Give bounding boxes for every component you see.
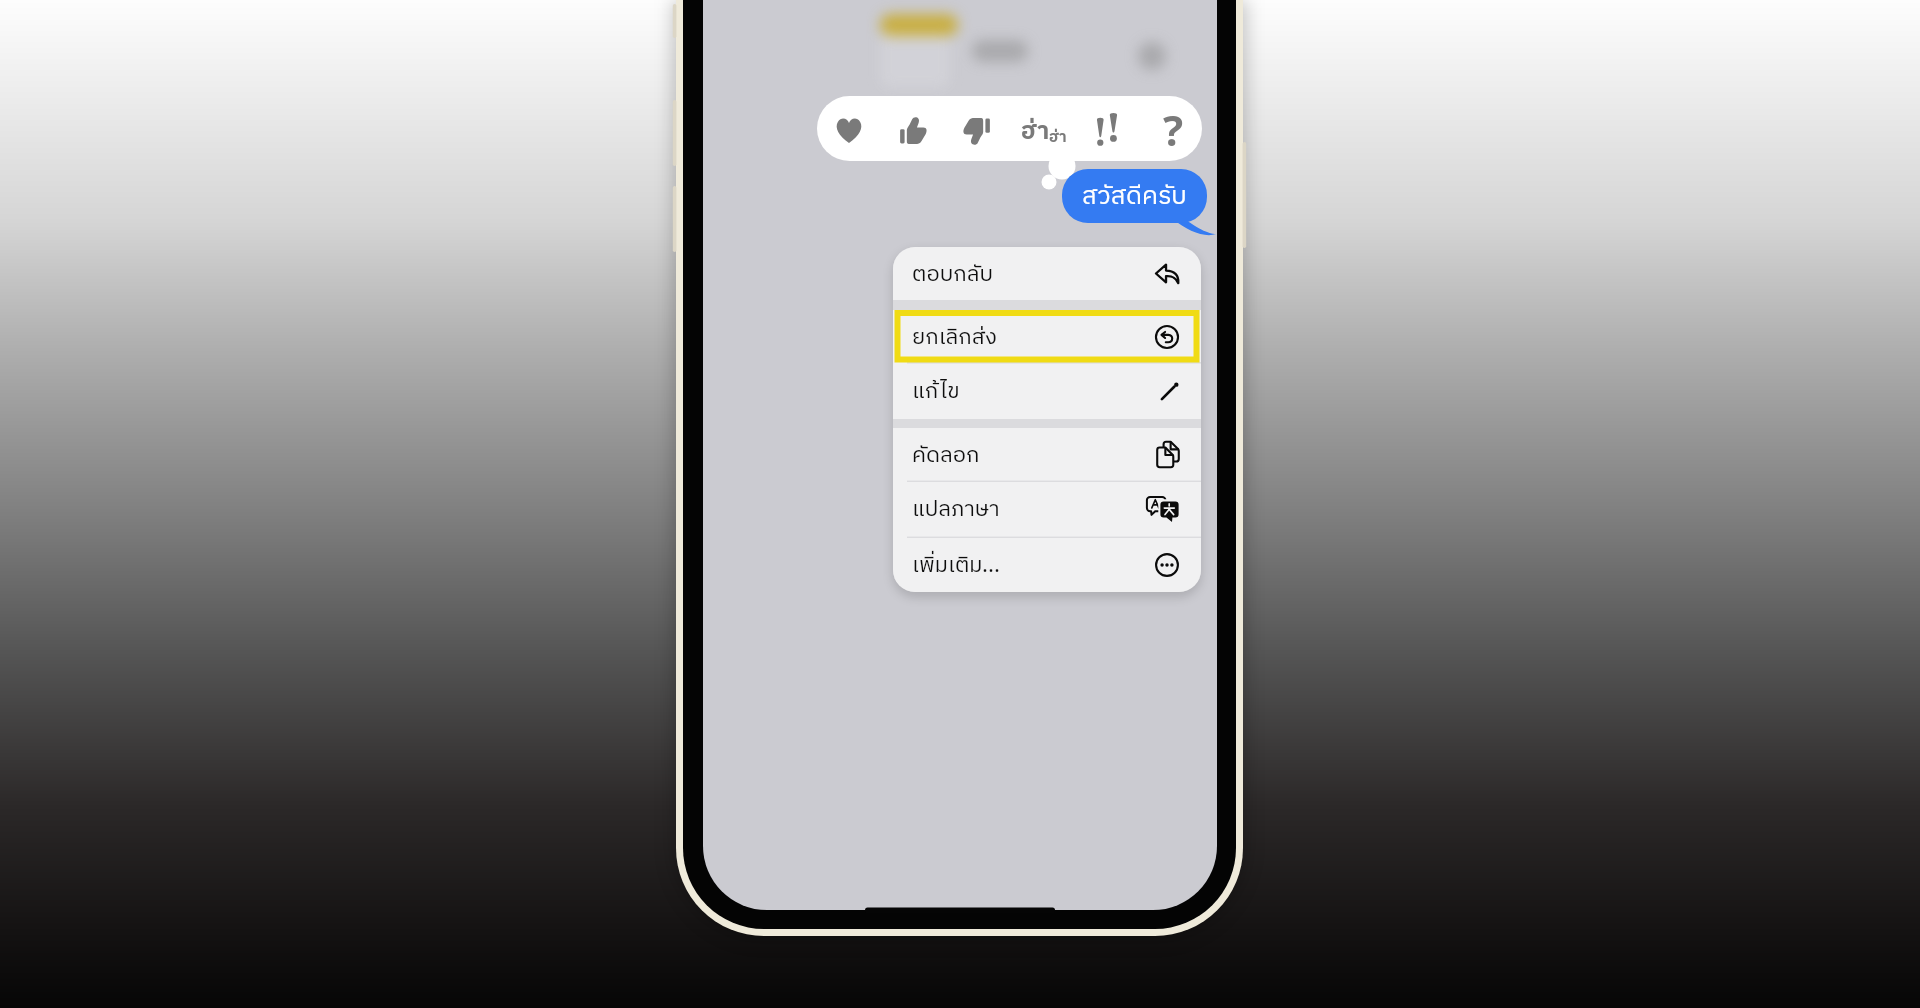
button[interactable]: ยกเลิกส่ง [893, 310, 1201, 363]
button[interactable]: Love [817, 96, 881, 161]
button[interactable]: Exclaim [1073, 96, 1137, 161]
button[interactable]: ตอบกลับ [893, 247, 1201, 300]
staticText: ? [1163, 101, 1184, 158]
staticText: แก้ไข [912, 373, 960, 409]
button[interactable]: เพิ่มเติม... [893, 537, 1201, 592]
button[interactable]: แปลภาษา [893, 481, 1201, 537]
staticText: แปลภาษา [912, 491, 1000, 527]
staticText: ตอบกลับ [912, 256, 993, 292]
staticText: สวัสดีครับ [1082, 176, 1187, 217]
staticText: ฮ่า [1049, 125, 1067, 150]
button[interactable]: แก้ไข [893, 363, 1201, 419]
button[interactable]: Question [1137, 96, 1201, 161]
staticText: คัดลอก [912, 437, 980, 473]
button[interactable]: Haha [1009, 96, 1073, 161]
button[interactable]: สวัสดีครับ [1062, 169, 1207, 223]
staticText: ยกเลิกส่ง [912, 319, 998, 355]
button[interactable]: Dislike [945, 96, 1009, 161]
button[interactable]: Like [881, 96, 945, 161]
staticText: ฮ่า [1021, 112, 1050, 152]
button[interactable]: คัดลอก [893, 428, 1201, 481]
staticText: เพิ่มเติม... [912, 547, 1000, 583]
